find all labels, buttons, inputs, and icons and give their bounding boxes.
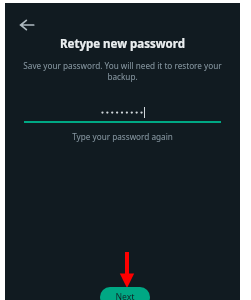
- button[interactable]: Next: [100, 287, 150, 300]
- button[interactable]: [5, 104, 240, 120]
- staticText: Next: [115, 291, 135, 300]
- button[interactable]: Back: [13, 11, 41, 39]
- staticText: Type your password again: [5, 131, 240, 142]
- staticText: Save your password. You will need it to …: [11, 60, 234, 82]
- staticText: Retype new password: [60, 36, 185, 52]
